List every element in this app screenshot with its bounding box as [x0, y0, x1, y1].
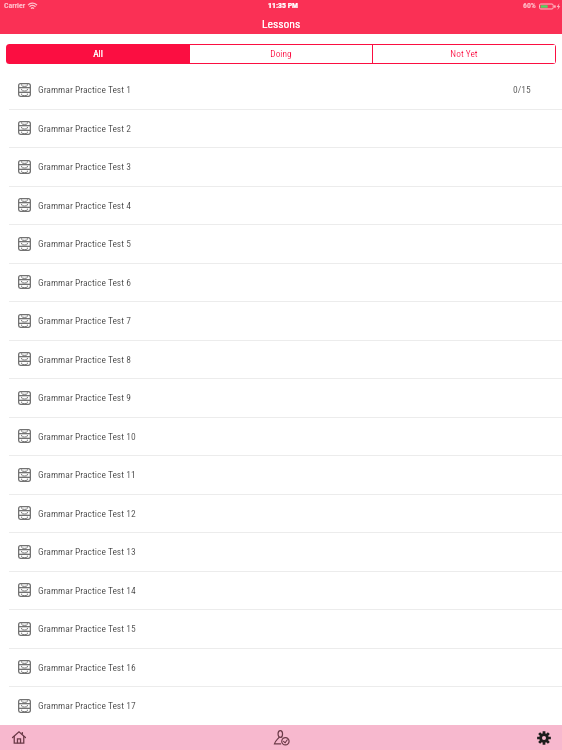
staticText: Grammar Practice Test 13 [38, 546, 136, 557]
staticText: Carrier [4, 1, 26, 10]
staticText: 0/15 [513, 84, 531, 95]
button[interactable]: Grammar Practice Test 2 [0, 109, 562, 147]
button[interactable]: Not Yet [373, 45, 555, 63]
staticText: Grammar Practice Test 16 [38, 662, 136, 673]
staticText: 60% [523, 1, 536, 10]
staticText: Grammar Practice Test 4 [38, 200, 131, 211]
staticText: Grammar Practice Test 1 [38, 84, 131, 95]
button[interactable]: Grammar Practice Test 5 [0, 224, 562, 263]
button[interactable]: Grammar Practice Test 10 [0, 417, 562, 455]
button[interactable]: Grammar Practice Test 1 [0, 70, 562, 109]
button[interactable]: Grammar Practice Test 3 [0, 147, 562, 186]
button[interactable]: Doing [190, 45, 372, 63]
staticText: Lessons [262, 17, 301, 31]
staticText: Grammar Practice Test 17 [38, 700, 136, 711]
button[interactable]: Grammar Practice Test 14 [0, 571, 562, 609]
button[interactable]: Grammar Practice Test 15 [0, 609, 562, 648]
button[interactable]: Profile [188, 725, 375, 750]
button[interactable]: Home [0, 725, 188, 750]
staticText: Not Yet [450, 48, 478, 59]
button[interactable]: Grammar Practice Test 16 [0, 648, 562, 686]
button[interactable]: All [7, 45, 189, 63]
staticText: Grammar Practice Test 2 [38, 123, 131, 134]
button[interactable]: Grammar Practice Test 8 [0, 340, 562, 378]
button[interactable]: Grammar Practice Test 7 [0, 301, 562, 340]
button[interactable]: Grammar Practice Test 9 [0, 378, 562, 417]
button[interactable]: Grammar Practice Test 13 [0, 532, 562, 571]
button[interactable]: Grammar Practice Test 17 [0, 686, 562, 725]
button[interactable]: Grammar Practice Test 6 [0, 263, 562, 301]
staticText: Doing [270, 48, 292, 59]
staticText: Grammar Practice Test 8 [38, 354, 131, 365]
button[interactable]: Grammar Practice Test 12 [0, 494, 562, 532]
staticText: Grammar Practice Test 11 [38, 469, 136, 480]
button[interactable]: Settings [375, 725, 562, 750]
staticText: 11:35 PM [268, 1, 299, 10]
staticText: Grammar Practice Test 9 [38, 392, 131, 403]
staticText: Grammar Practice Test 6 [38, 277, 131, 288]
staticText: Grammar Practice Test 15 [38, 623, 136, 634]
staticText: Grammar Practice Test 7 [38, 315, 131, 326]
button[interactable]: Grammar Practice Test 11 [0, 455, 562, 494]
staticText: All [93, 48, 103, 59]
staticText: Grammar Practice Test 3 [38, 161, 131, 172]
button[interactable]: Grammar Practice Test 4 [0, 186, 562, 224]
staticText: Grammar Practice Test 14 [38, 585, 136, 596]
staticText: Grammar Practice Test 12 [38, 508, 136, 519]
staticText: Grammar Practice Test 10 [38, 431, 136, 442]
staticText: Grammar Practice Test 5 [38, 238, 131, 249]
